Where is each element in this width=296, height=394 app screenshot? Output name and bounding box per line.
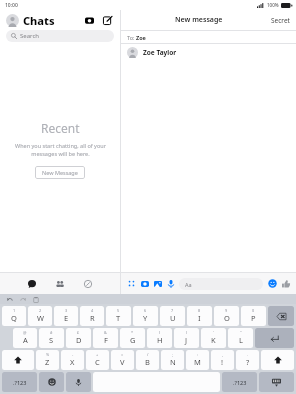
staticText: % — [46, 352, 50, 357]
staticText: L — [239, 335, 243, 345]
button[interactable]: ' — [201, 328, 226, 348]
staticText: G — [130, 335, 136, 345]
staticText: J — [185, 335, 188, 345]
staticText: C — [95, 357, 100, 367]
staticText: F — [104, 335, 108, 345]
button[interactable]: 9 — [214, 306, 239, 326]
staticText: 9 — [225, 308, 228, 313]
staticText: P — [251, 313, 256, 323]
button[interactable]: Dictation — [66, 372, 91, 392]
button[interactable]: New message — [175, 15, 223, 25]
button[interactable]: . — [236, 350, 259, 370]
staticText: H — [157, 335, 163, 345]
button[interactable]: - — [61, 350, 84, 370]
button[interactable]: Discover — [80, 276, 96, 292]
button[interactable]: * — [120, 328, 145, 348]
staticText: £ — [77, 330, 80, 335]
staticText: Search — [20, 32, 39, 40]
staticText: + — [96, 352, 99, 357]
button[interactable]: & — [93, 328, 118, 348]
staticText: Recent — [41, 120, 80, 136]
staticText: .?123 — [233, 379, 247, 386]
button[interactable]: Voice — [164, 277, 177, 290]
button[interactable]: Camera — [138, 277, 151, 290]
button[interactable]: 0 — [241, 306, 266, 326]
button[interactable]: Chats — [24, 276, 40, 292]
staticText: S — [49, 335, 54, 345]
button[interactable]: £ — [66, 328, 91, 348]
button[interactable]: % — [36, 350, 59, 370]
button[interactable]: Hide keyboard — [259, 372, 294, 392]
button[interactable]: Camera — [82, 13, 96, 27]
button[interactable]: Secret — [271, 16, 290, 25]
button[interactable]: Numbers — [2, 372, 37, 392]
button[interactable]: Redo — [18, 295, 27, 304]
staticText: 10:00 — [5, 2, 18, 9]
staticText: 5 — [117, 308, 120, 313]
button[interactable]: ) — [174, 328, 199, 348]
button[interactable]: Shift — [2, 350, 34, 370]
button[interactable]: Numbers — [222, 372, 257, 392]
button[interactable]: 7 — [160, 306, 185, 326]
staticText: New Message — [42, 169, 78, 176]
button[interactable]: @ — [13, 328, 37, 348]
button[interactable]: , — [211, 350, 234, 370]
button[interactable]: # — [39, 328, 64, 348]
staticText: Aa — [185, 281, 192, 288]
staticText: B — [145, 357, 150, 367]
staticText: : — [197, 352, 199, 357]
button[interactable]: Like — [279, 277, 292, 290]
button[interactable]: Undo — [5, 295, 14, 304]
staticText: T — [116, 313, 121, 323]
staticText: I — [198, 313, 201, 323]
button[interactable]: 8 — [187, 306, 212, 326]
staticText: M — [194, 357, 201, 367]
button[interactable]: New Message — [35, 166, 85, 179]
button[interactable]: 3 — [54, 306, 78, 326]
button[interactable]: / — [136, 350, 159, 370]
button[interactable]: Emoji keyboard — [39, 372, 64, 392]
button[interactable]: 2 — [28, 306, 52, 326]
staticText: Y — [143, 313, 148, 323]
button[interactable]: Paste — [31, 295, 40, 304]
button[interactable]: 6 — [133, 306, 158, 326]
staticText: 6 — [144, 308, 147, 313]
staticText: " — [240, 330, 242, 335]
button[interactable]: 1 — [2, 306, 26, 326]
staticText: When you start chatting, all of your mes… — [15, 142, 106, 158]
button[interactable]: : — [186, 350, 209, 370]
button[interactable]: Shift — [261, 350, 294, 370]
button[interactable]: " — [228, 328, 253, 348]
staticText: 2 — [39, 308, 42, 313]
staticText: Zoe — [136, 34, 146, 41]
staticText: ' — [213, 330, 214, 335]
staticText: - — [72, 352, 74, 357]
staticText: ( — [159, 330, 161, 335]
staticText: 3 — [65, 308, 68, 313]
button[interactable]: Photos — [151, 277, 164, 290]
button[interactable]: 4 — [80, 306, 104, 326]
button[interactable]: ; — [161, 350, 184, 370]
staticText: Q — [11, 313, 17, 323]
button[interactable]: Emoji — [266, 277, 279, 290]
staticText: # — [50, 330, 53, 335]
staticText: Z — [45, 357, 50, 367]
staticText: O — [224, 313, 230, 323]
button[interactable]: Search — [6, 30, 114, 42]
button[interactable]: ( — [147, 328, 172, 348]
staticText: ? — [246, 357, 250, 367]
staticText: @ — [23, 330, 27, 335]
button[interactable]: + — [86, 350, 109, 370]
button[interactable]: = — [111, 350, 134, 370]
button[interactable]: New message — [100, 13, 114, 27]
staticText: .?123 — [13, 379, 27, 386]
button[interactable]: Aa — [179, 278, 263, 290]
button[interactable]: Zoe Taylor — [127, 44, 290, 60]
button[interactable]: People — [52, 276, 68, 292]
button[interactable]: More — [125, 277, 138, 290]
button[interactable]: 5 — [106, 306, 131, 326]
button[interactable]: Return — [255, 328, 294, 348]
staticText: / — [147, 352, 149, 357]
button[interactable]: Backspace — [268, 306, 294, 326]
